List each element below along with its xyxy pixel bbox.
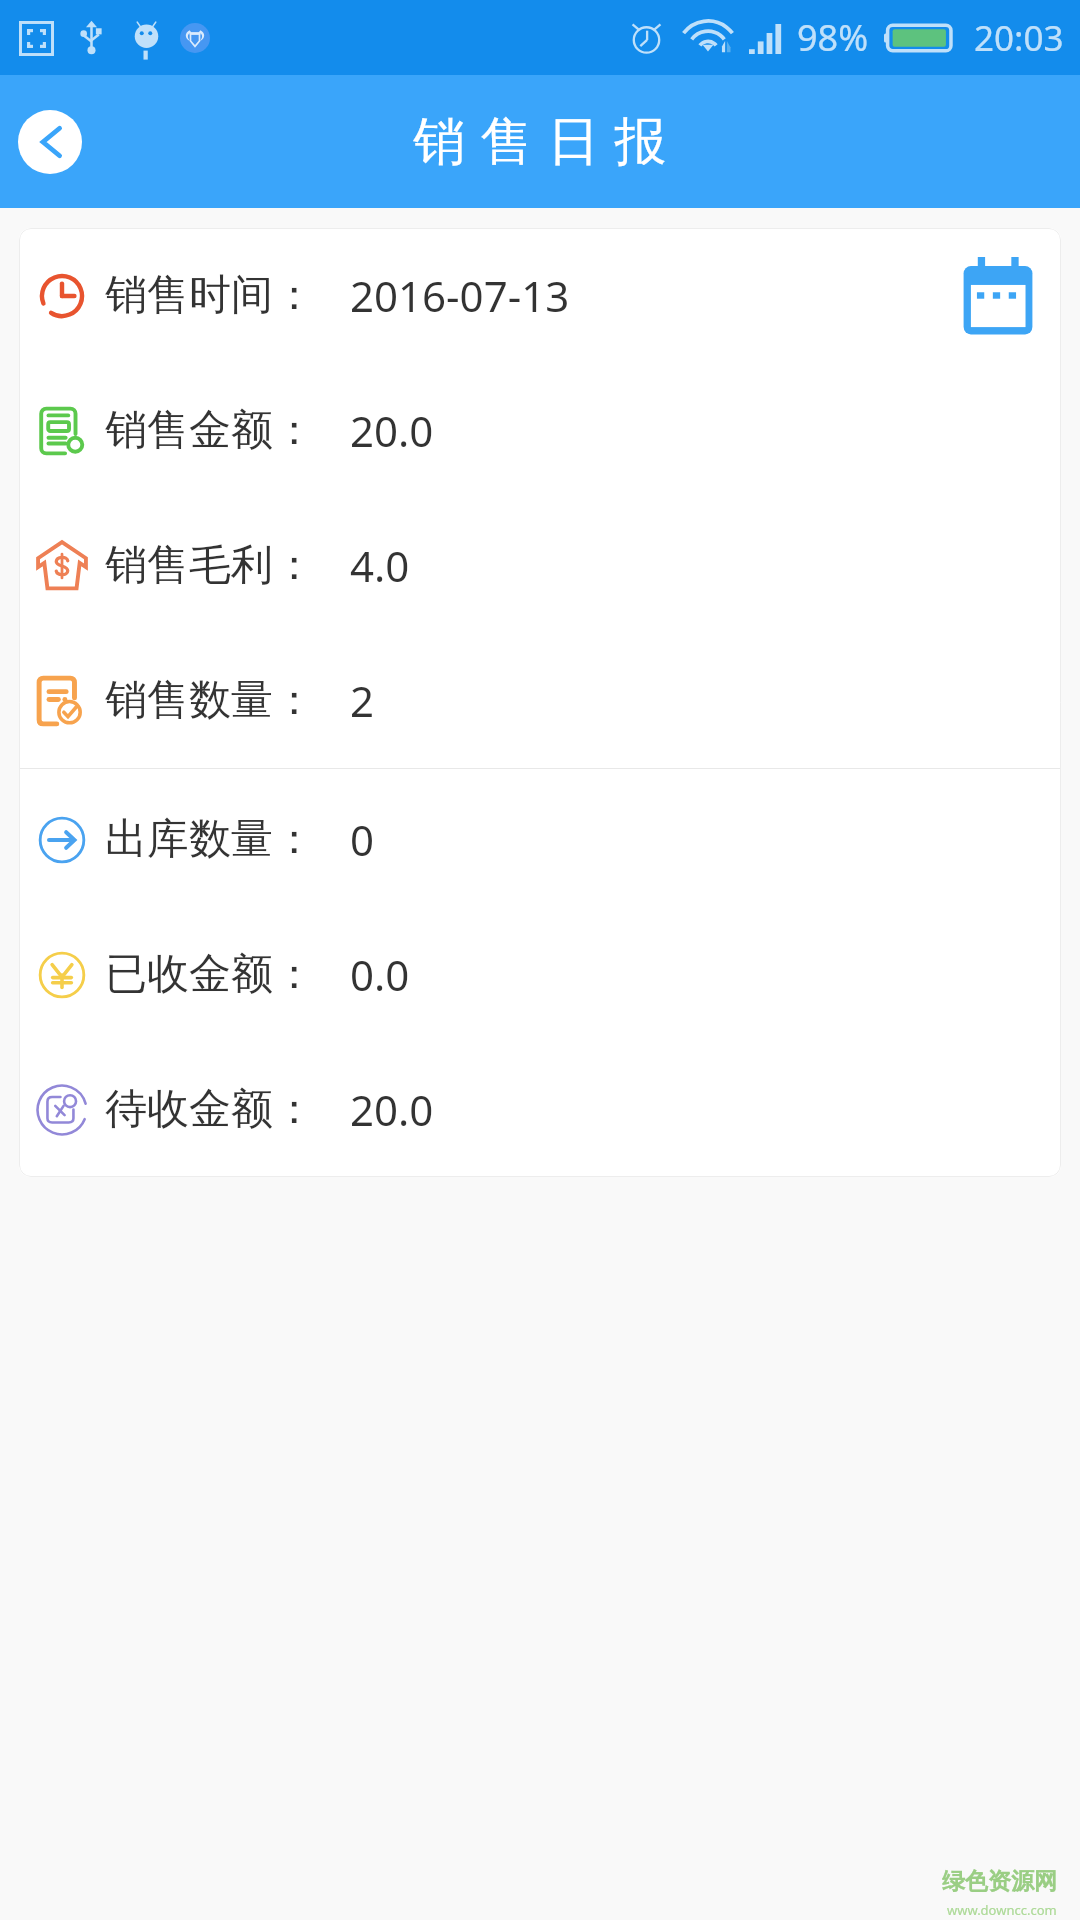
staticText: 待收金额： <box>105 1083 315 1136</box>
staticText: 销售毛利： <box>105 539 315 592</box>
button[interactable]: 销售金额： <box>19 363 1061 498</box>
staticText: 4.0 <box>350 537 410 594</box>
staticText: 2016-07-13 <box>350 267 570 324</box>
staticText: 已收金额： <box>105 948 315 1001</box>
staticText: 20:03 <box>974 14 1064 62</box>
staticText: 销售时间： <box>105 269 315 322</box>
button[interactable]: 销售时间： <box>19 228 1061 363</box>
button[interactable]: 出库数量： <box>19 772 1061 907</box>
button[interactable]: Pick date <box>948 246 1048 346</box>
staticText: 98% <box>797 13 869 62</box>
button[interactable]: 销售毛利： <box>19 498 1061 633</box>
staticText: 绿色资源网 <box>942 1867 1057 1896</box>
staticText: 0.0 <box>350 946 410 1003</box>
staticText: 销售金额： <box>105 404 315 457</box>
staticText: www.downcc.com <box>947 1901 1057 1919</box>
staticText: 20.0 <box>350 402 434 459</box>
staticText: 出库数量： <box>105 813 315 866</box>
button[interactable]: Back <box>18 110 82 174</box>
staticText: 销售日报 <box>406 109 674 175</box>
staticText: 0 <box>350 811 375 868</box>
button[interactable]: 销售数量： <box>19 633 1061 768</box>
button[interactable]: 待收金额： <box>19 1042 1061 1177</box>
button[interactable]: 已收金额： <box>19 907 1061 1042</box>
staticText: 销售数量： <box>105 674 315 727</box>
staticText: 2 <box>350 672 375 729</box>
staticText: 20.0 <box>350 1081 434 1138</box>
